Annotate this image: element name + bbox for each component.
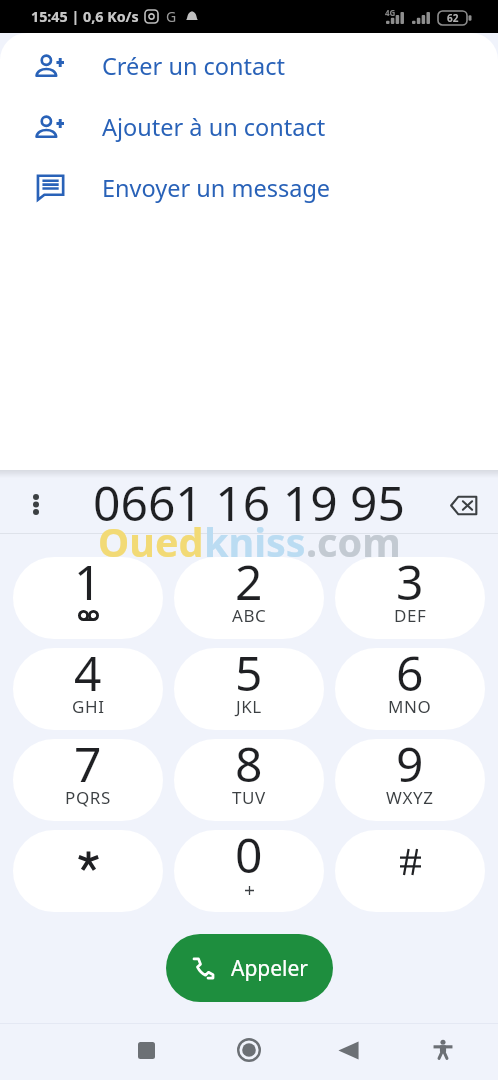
staticText: 8 <box>235 739 263 796</box>
button[interactable]: More options <box>0 470 72 524</box>
staticText: DEF <box>394 604 427 627</box>
staticText: 1 <box>74 557 102 614</box>
button[interactable]: Accessibility <box>409 1025 477 1077</box>
staticText: WXYZ <box>386 786 434 809</box>
button[interactable]: 1 <box>13 557 163 639</box>
button[interactable]: Ajouter à un contact <box>0 96 498 157</box>
button[interactable] <box>335 830 485 912</box>
staticText: 3 <box>396 557 424 614</box>
button[interactable]: 8 <box>174 739 324 821</box>
button[interactable] <box>13 830 163 912</box>
staticText: G <box>166 7 177 26</box>
button[interactable]: 9 <box>335 739 485 821</box>
staticText: Ajouter à un contact <box>102 111 326 143</box>
button[interactable]: 5 <box>174 648 324 730</box>
staticText: 9 <box>396 739 424 796</box>
staticText: Envoyer un message <box>102 172 331 204</box>
staticText: 4 <box>74 648 102 705</box>
staticText: 4G <box>385 7 396 18</box>
staticText: 62 <box>447 11 459 25</box>
button[interactable]: Back <box>314 1025 382 1077</box>
staticText: 6 <box>396 648 424 705</box>
staticText: 2 <box>235 557 263 614</box>
button[interactable]: Envoyer un message <box>0 157 498 218</box>
button[interactable]: Home <box>215 1025 283 1077</box>
button[interactable]: 0 <box>174 830 324 912</box>
button[interactable]: Recents <box>112 1025 180 1077</box>
staticText: 0 <box>235 830 263 887</box>
staticText: 15:45 | 0,6 Ko/s <box>31 7 139 26</box>
button[interactable]: 7 <box>13 739 163 821</box>
button[interactable]: Appeler <box>166 934 333 1002</box>
button[interactable]: Créer un contact <box>0 35 498 96</box>
staticText: PQRS <box>65 786 111 809</box>
staticText: Oued <box>98 515 204 569</box>
staticText: ABC <box>232 604 267 627</box>
staticText: 7 <box>74 739 102 796</box>
staticText: Appeler <box>231 954 309 983</box>
staticText: TUV <box>232 786 266 809</box>
staticText: JKL <box>236 695 262 718</box>
staticText: 5 <box>235 648 263 705</box>
button[interactable]: 2 <box>174 557 324 639</box>
button[interactable]: 6 <box>335 648 485 730</box>
button[interactable]: Backspace <box>426 470 498 524</box>
staticText: 0661 16 19 95 <box>93 470 406 524</box>
button[interactable]: 4 <box>13 648 163 730</box>
staticText: kniss <box>204 515 306 569</box>
staticText: GHI <box>72 695 105 718</box>
staticText: MNO <box>388 695 432 718</box>
staticText: Créer un contact <box>102 50 286 82</box>
button[interactable]: 3 <box>335 557 485 639</box>
staticText: .com <box>306 515 401 569</box>
